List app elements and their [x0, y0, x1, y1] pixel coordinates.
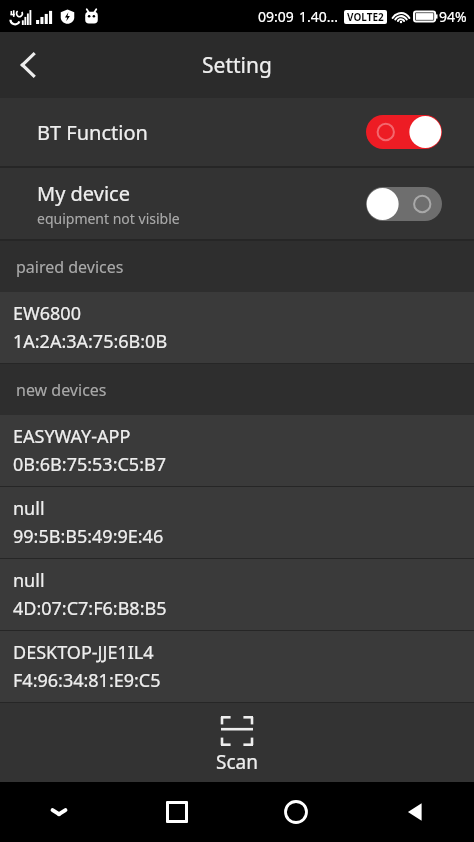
staticText: new devices — [16, 379, 107, 401]
staticText: null — [13, 496, 45, 521]
staticText: EASYWAY-APP — [13, 424, 131, 449]
staticText: 4D:07:C7:F6:B8:B5 — [13, 596, 167, 621]
staticText: 1A:2A:3A:75:6B:0B — [13, 329, 168, 354]
button[interactable]: null — [0, 487, 474, 558]
staticText: null — [13, 568, 45, 593]
button[interactable]: null — [0, 559, 474, 630]
staticText: 0B:6B:75:53:C5:B7 — [13, 452, 166, 477]
button[interactable]: DESKTOP-JJE1IL4 — [0, 631, 474, 702]
button[interactable]: Recent apps — [118, 782, 236, 842]
staticText: VOLTE2 — [347, 10, 384, 24]
staticText: EW6800 — [13, 301, 81, 326]
button[interactable]: Hide navigation bar — [0, 782, 118, 842]
staticText: 99:5B:B5:49:9E:46 — [13, 524, 164, 549]
button[interactable]: Scan — [196, 712, 278, 779]
staticText: F4:96:34:81:E9:C5 — [13, 668, 161, 693]
staticText: Scan — [216, 749, 258, 775]
button[interactable]: Back — [355, 782, 474, 842]
staticText: My device — [37, 180, 130, 207]
staticText: 09:09 — [258, 7, 294, 26]
staticText: Setting — [202, 51, 272, 80]
staticText: paired devices — [16, 256, 124, 278]
staticText: BT Function — [37, 119, 148, 146]
button[interactable]: My device — [0, 168, 474, 239]
button[interactable]: BT Function — [0, 98, 474, 166]
staticText: equipment not visible — [37, 209, 180, 228]
button[interactable]: Back — [0, 37, 56, 93]
button[interactable]: Home — [236, 782, 355, 842]
staticText: 1.40... — [299, 7, 339, 26]
button[interactable]: EASYWAY-APP — [0, 415, 474, 486]
staticText: DESKTOP-JJE1IL4 — [13, 640, 154, 665]
button[interactable]: EW6800 — [0, 292, 474, 363]
staticText: 94% — [439, 7, 467, 26]
